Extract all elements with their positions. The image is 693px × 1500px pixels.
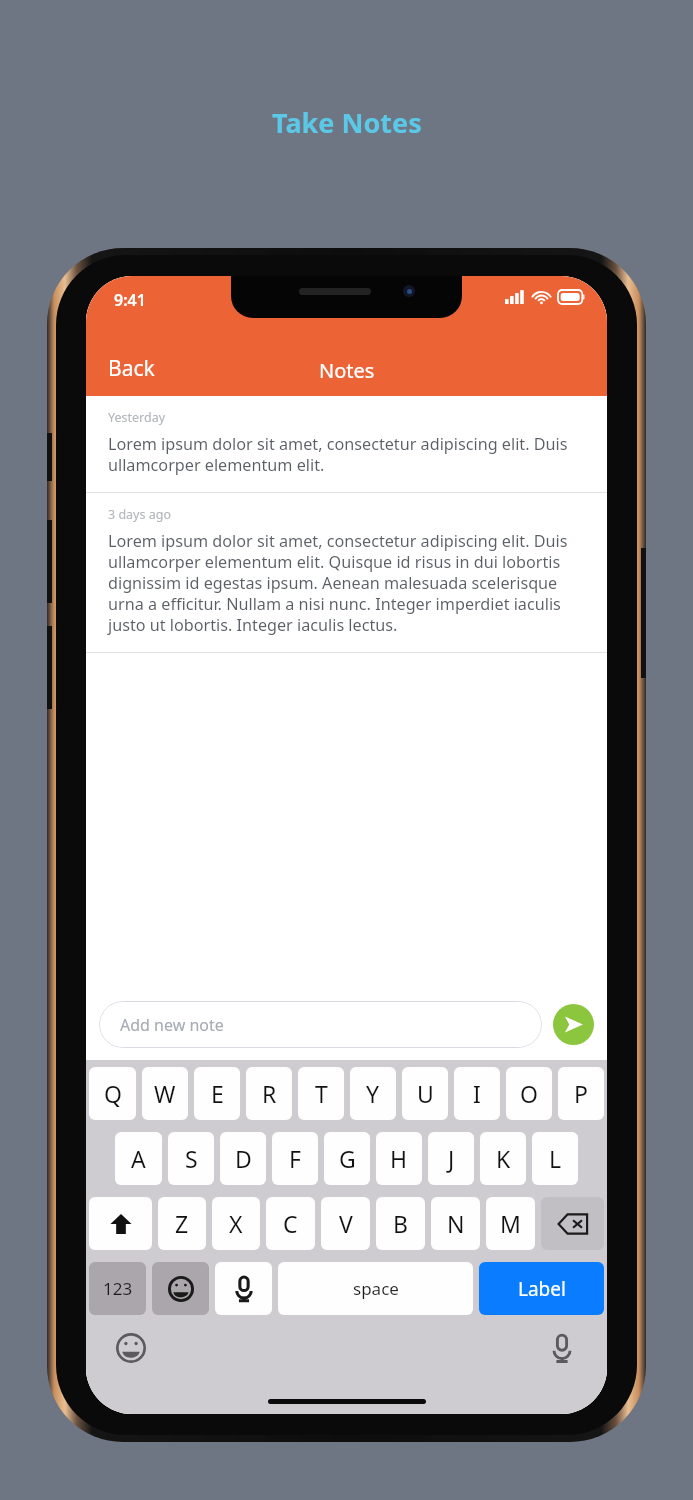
staticText: S [185,1143,198,1174]
staticText: C [283,1208,298,1239]
button[interactable]: C [266,1197,315,1250]
staticText: U [417,1078,434,1109]
button[interactable]: Dictation [545,1331,579,1365]
button[interactable]: V [321,1197,370,1250]
button[interactable]: M [486,1197,535,1250]
button[interactable]: F [272,1132,318,1185]
staticText: O [520,1078,538,1109]
button[interactable]: E [194,1067,240,1120]
button[interactable]: N [431,1197,480,1250]
staticText: H [390,1143,408,1174]
staticText: Yesterday [108,409,166,426]
button[interactable]: J [428,1132,474,1185]
button[interactable]: L [532,1132,578,1185]
button[interactable]: D [220,1132,266,1185]
staticText: R [262,1078,277,1109]
button[interactable]: space [278,1262,473,1315]
staticText: I [473,1078,481,1109]
button[interactable]: Add new note [99,1001,542,1048]
staticText: D [235,1143,252,1174]
staticText: Add new note [120,1014,224,1036]
staticText: K [496,1143,511,1174]
staticText: 9:41 [114,289,146,311]
button[interactable]: I [454,1067,500,1120]
button[interactable]: 123 [89,1262,146,1315]
staticText: space [353,1277,399,1300]
button[interactable]: R [246,1067,292,1120]
staticText: Lorem ipsum dolor sit amet, consectetur … [108,530,587,636]
button[interactable]: 3 days ago [86,493,607,652]
button[interactable]: Voice input [215,1262,272,1315]
button[interactable]: Label [479,1262,604,1315]
button[interactable]: G [324,1132,370,1185]
button[interactable]: Q [89,1067,136,1120]
button[interactable]: Emoji picker [114,1331,148,1365]
staticText: 3 days ago [108,506,171,523]
staticText: 123 [103,1277,133,1300]
staticText: V [339,1208,353,1239]
button[interactable]: U [402,1067,448,1120]
button[interactable]: P [558,1067,604,1120]
button[interactable]: X [212,1197,260,1250]
button[interactable]: S [168,1132,214,1185]
staticText: L [549,1143,562,1174]
button[interactable]: Send note [553,1004,594,1045]
button[interactable]: A [115,1132,162,1185]
staticText: G [339,1143,356,1174]
staticText: Z [175,1208,189,1239]
staticText: P [574,1078,588,1109]
button[interactable]: T [298,1067,344,1120]
button[interactable]: Y [350,1067,396,1120]
staticText: Take Notes [272,104,422,141]
staticText: W [154,1078,176,1109]
button[interactable]: W [142,1067,188,1120]
staticText: Notes [319,357,375,384]
staticText: Label [518,1276,566,1302]
staticText: M [500,1208,521,1239]
button[interactable]: Backspace [541,1197,604,1250]
staticText: F [289,1143,301,1174]
button[interactable]: B [376,1197,425,1250]
button[interactable]: O [506,1067,552,1120]
button[interactable]: Z [158,1197,206,1250]
staticText: E [211,1078,224,1109]
button[interactable]: Yesterday [86,396,607,492]
button[interactable]: Back [86,346,171,391]
staticText: A [131,1143,146,1174]
button[interactable]: K [480,1132,526,1185]
staticText: B [393,1208,408,1239]
staticText: Lorem ipsum dolor sit amet, consectetur … [108,433,587,476]
button[interactable]: Emoji [152,1262,209,1315]
staticText: Back [108,354,155,383]
staticText: T [315,1078,328,1109]
button[interactable]: Shift [89,1197,152,1250]
staticText: Y [366,1078,380,1109]
staticText: N [447,1208,465,1239]
staticText: J [448,1143,455,1174]
staticText: X [229,1208,243,1239]
staticText: Q [104,1078,122,1109]
button[interactable]: H [376,1132,422,1185]
